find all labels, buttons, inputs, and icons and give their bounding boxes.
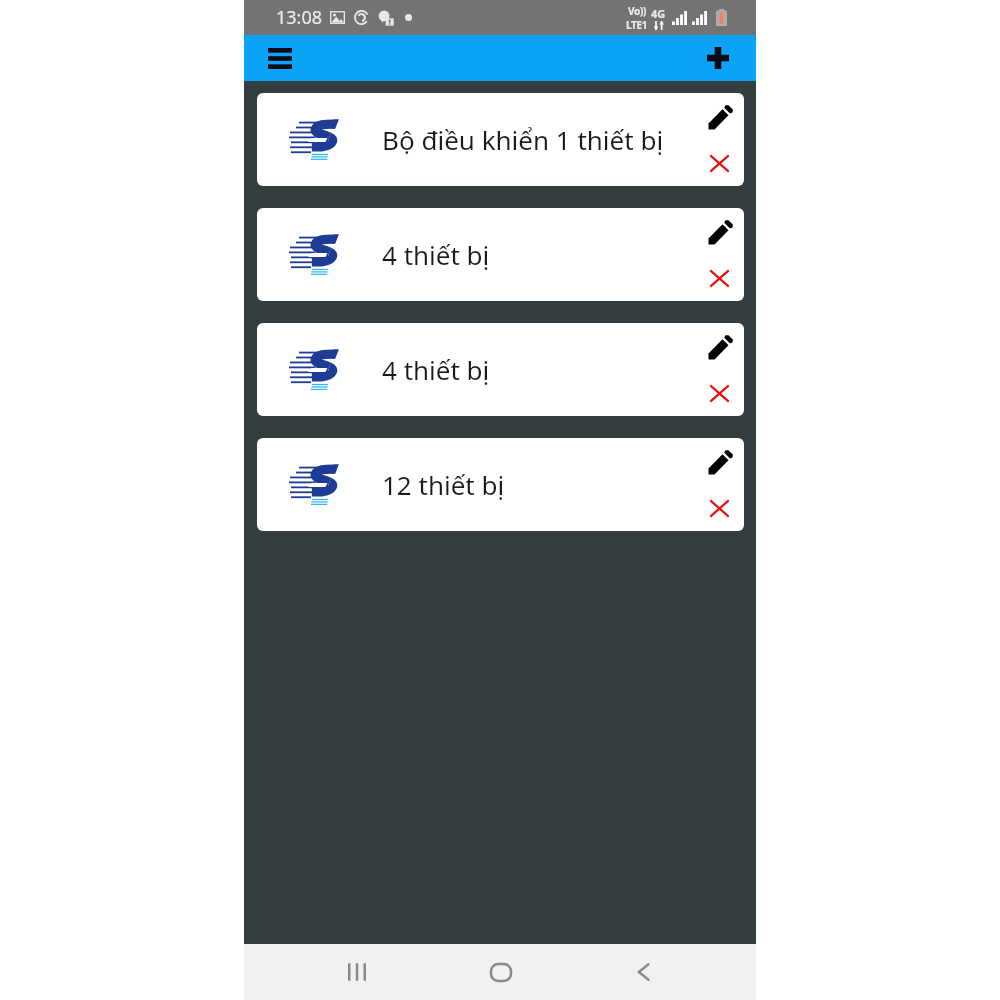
staticText: 13:08 [276,5,323,30]
button[interactable]: Delete [699,485,743,531]
staticText: Vo)) [628,4,647,18]
staticText: 4 thiết bị [382,352,490,387]
button[interactable]: Back [572,944,715,1000]
button[interactable]: Edit [699,439,743,485]
button[interactable]: 4 thiết bị [257,323,744,416]
button[interactable]: 12 thiết bị [257,438,744,531]
button[interactable]: Home [429,944,572,1000]
button[interactable]: Recents [285,944,429,1000]
button[interactable]: Edit [699,209,743,255]
button[interactable]: Edit [699,324,743,370]
button[interactable]: Edit [699,94,743,140]
staticText: 12 thiết bị [382,467,505,502]
button[interactable]: Delete [699,140,743,186]
button[interactable]: Add [696,36,740,80]
staticText: Bộ điều khiển 1 thiết bị [382,122,664,157]
button[interactable]: Menu [258,36,302,80]
staticText: 4G [651,6,666,21]
staticText: LTE1 [626,18,648,32]
button[interactable]: Delete [699,370,743,416]
button[interactable]: Delete [699,255,743,301]
staticText: 4 thiết bị [382,237,490,272]
button[interactable]: Bộ điều khiển 1 thiết bị [257,93,744,186]
button[interactable]: 4 thiết bị [257,208,744,301]
